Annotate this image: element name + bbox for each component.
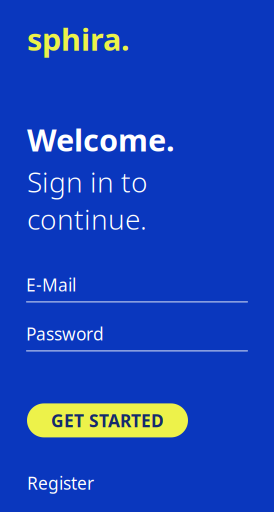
staticText: Password xyxy=(26,322,104,345)
staticText: Register xyxy=(27,471,94,494)
staticText: Sign in to continue. xyxy=(27,163,148,237)
staticText: E-Mail xyxy=(26,273,76,296)
button[interactable]: Register xyxy=(27,471,94,494)
staticText: Welcome. xyxy=(27,119,175,160)
button[interactable]: GET STARTED xyxy=(27,403,188,437)
staticText: sphira. xyxy=(27,19,130,59)
staticText: GET STARTED xyxy=(51,409,164,432)
